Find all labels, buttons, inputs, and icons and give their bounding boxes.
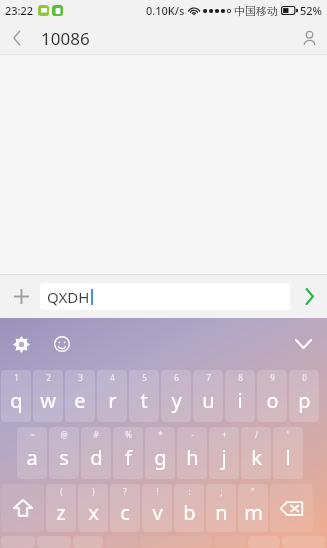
- staticText: c: [120, 499, 130, 526]
- staticText: QXDH: [47, 287, 90, 307]
- staticText: *: [158, 429, 163, 440]
- staticText: h: [186, 444, 199, 471]
- button[interactable]: Add: [6, 281, 36, 311]
- staticText: 23:22: [5, 3, 34, 18]
- button[interactable]: ?: [110, 484, 140, 532]
- staticText: u: [202, 387, 215, 414]
- staticText: g: [154, 444, 167, 471]
- staticText: a: [26, 444, 38, 471]
- staticText: n: [215, 499, 228, 526]
- button[interactable]: @: [49, 427, 79, 479]
- staticText: t: [140, 387, 148, 414]
- button[interactable]: ;: [206, 484, 236, 532]
- button[interactable]: 9: [257, 370, 287, 422]
- staticText: +: [222, 429, 227, 440]
- staticText: 8: [238, 372, 243, 383]
- staticText: j: [221, 444, 227, 471]
- button[interactable]: *: [145, 427, 175, 479]
- button[interactable]: 3: [65, 370, 95, 422]
- staticText: z: [56, 499, 66, 526]
- staticText: i: [237, 387, 243, 414]
- button[interactable]: 5: [129, 370, 159, 422]
- staticText: !: [156, 486, 159, 497]
- button[interactable]: 7: [193, 370, 223, 422]
- staticText: (: [60, 486, 63, 497]
- button[interactable]: Hide keyboard: [287, 328, 319, 360]
- button[interactable]: Contact details: [291, 21, 327, 55]
- button[interactable]: QXDH: [40, 283, 290, 310]
- staticText: #: [93, 429, 99, 440]
- staticText: o: [266, 387, 279, 414]
- button[interactable]: !: [142, 484, 172, 532]
- button[interactable]: 1: [1, 370, 31, 422]
- staticText: ?: [123, 486, 127, 497]
- staticText: v: [152, 499, 163, 526]
- staticText: 7: [206, 372, 211, 383]
- button[interactable]: Settings: [6, 329, 36, 359]
- staticText: -: [191, 429, 194, 440]
- staticText: 1: [14, 372, 19, 383]
- staticText: 2: [46, 372, 51, 383]
- staticText: 52%: [300, 3, 322, 18]
- button[interactable]: +: [209, 427, 239, 479]
- staticText: 6: [174, 372, 179, 383]
- staticText: 中国移动: [234, 4, 278, 18]
- staticText: b: [183, 499, 196, 526]
- button[interactable]: Emoji: [47, 329, 77, 359]
- staticText: ~: [30, 429, 35, 440]
- staticText: r: [108, 387, 117, 414]
- staticText: y: [171, 387, 182, 414]
- button[interactable]: ): [78, 484, 108, 532]
- staticText: p: [298, 387, 311, 414]
- button[interactable]: 0: [289, 370, 319, 422]
- staticText: %: [125, 429, 132, 440]
- staticText: w: [40, 387, 56, 414]
- staticText: m: [244, 499, 263, 526]
- staticText: 10086: [41, 27, 90, 50]
- staticText: 9: [270, 372, 275, 383]
- button[interactable]: Back: [0, 21, 34, 55]
- button[interactable]: Shift: [1, 484, 44, 532]
- button[interactable]: Send: [295, 282, 323, 310]
- staticText: f: [125, 444, 132, 471]
- staticText: l: [285, 444, 291, 471]
- staticText: e: [74, 387, 86, 414]
- staticText: d: [90, 444, 103, 471]
- staticText: x: [88, 499, 99, 526]
- button[interactable]: #: [81, 427, 111, 479]
- staticText: ;: [220, 486, 223, 497]
- button[interactable]: ~: [17, 427, 47, 479]
- staticText: /: [255, 429, 258, 440]
- staticText: q: [10, 387, 23, 414]
- button[interactable]: 2: [33, 370, 63, 422]
- button[interactable]: Backspace: [270, 484, 313, 532]
- button[interactable]: 8: [225, 370, 255, 422]
- staticText: s: [59, 444, 69, 471]
- staticText: ": [251, 486, 255, 497]
- button[interactable]: :: [174, 484, 204, 532]
- button[interactable]: ": [238, 484, 268, 532]
- button[interactable]: /: [241, 427, 271, 479]
- button[interactable]: -: [177, 427, 207, 479]
- staticText: :: [188, 486, 191, 497]
- button[interactable]: %: [113, 427, 143, 479]
- staticText: 0.10K/s: [146, 3, 185, 18]
- button[interactable]: (: [46, 484, 76, 532]
- staticText: 0: [302, 372, 307, 383]
- staticText: k: [251, 444, 262, 471]
- staticText: ': [287, 429, 289, 440]
- button[interactable]: ': [273, 427, 303, 479]
- staticText: ): [92, 486, 95, 497]
- button[interactable]: 6: [161, 370, 191, 422]
- staticText: 4: [110, 372, 115, 383]
- staticText: 3: [78, 372, 83, 383]
- button[interactable]: 4: [97, 370, 127, 422]
